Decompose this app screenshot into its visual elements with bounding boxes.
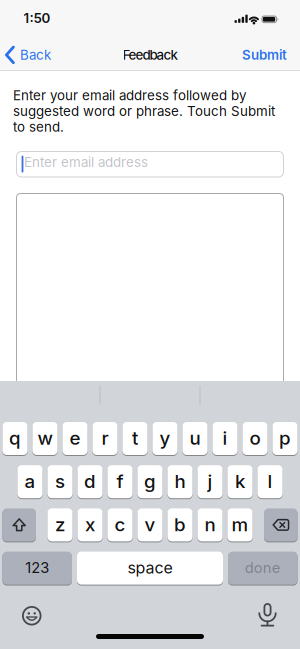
- button[interactable]: m: [227, 508, 253, 542]
- button[interactable]: Back: [5, 37, 51, 72]
- button[interactable]: Delete: [264, 508, 298, 542]
- staticText: z: [55, 513, 65, 535]
- button[interactable]: a: [17, 465, 43, 499]
- button[interactable]: z: [47, 508, 73, 542]
- staticText: Submit: [242, 47, 287, 63]
- button[interactable]: l: [257, 465, 283, 499]
- staticText: n: [204, 513, 215, 535]
- button[interactable]: space: [77, 552, 223, 586]
- staticText: l: [267, 470, 272, 492]
- staticText: q: [9, 427, 21, 449]
- button[interactable]: n: [197, 508, 223, 542]
- staticText: h: [174, 470, 185, 492]
- staticText: x: [85, 513, 95, 535]
- staticText: v: [144, 513, 155, 535]
- staticText: space: [127, 558, 172, 577]
- button[interactable]: u: [182, 422, 208, 456]
- staticText: Enter your email address followed by: [13, 87, 246, 103]
- button[interactable]: k: [227, 465, 253, 499]
- staticText: e: [69, 427, 80, 449]
- staticText: Feedback: [122, 47, 177, 63]
- staticText: u: [189, 427, 200, 449]
- staticText: Enter email address: [24, 154, 148, 170]
- staticText: c: [114, 513, 125, 535]
- button[interactable]: f: [107, 465, 133, 499]
- staticText: g: [144, 470, 156, 492]
- staticText: k: [235, 470, 245, 492]
- button[interactable]: x: [77, 508, 103, 542]
- button[interactable]: w: [32, 422, 58, 456]
- button[interactable]: i: [212, 422, 238, 456]
- staticText: p: [279, 427, 291, 449]
- staticText: i: [222, 427, 227, 449]
- staticText: done: [245, 559, 281, 576]
- staticText: m: [231, 513, 248, 535]
- button[interactable]: done: [228, 552, 298, 586]
- button[interactable]: q: [2, 422, 28, 456]
- staticText: suggested word or phrase. Touch Submit: [13, 103, 275, 119]
- button[interactable]: t: [122, 422, 148, 456]
- button[interactable]: s: [47, 465, 73, 499]
- button[interactable]: p: [272, 422, 298, 456]
- staticText: f: [116, 470, 123, 492]
- button[interactable]: b: [167, 508, 193, 542]
- staticText: r: [101, 427, 108, 449]
- staticText: b: [174, 513, 186, 535]
- staticText: w: [37, 427, 52, 449]
- staticText: t: [132, 427, 138, 449]
- button[interactable]: Emoji: [22, 606, 41, 625]
- staticText: y: [159, 427, 170, 449]
- staticText: j: [207, 470, 212, 492]
- button[interactable]: Dictate: [257, 603, 278, 626]
- staticText: s: [55, 470, 65, 492]
- button[interactable]: Shift: [2, 508, 36, 542]
- staticText: Back: [20, 47, 51, 63]
- button[interactable]: 123: [2, 552, 72, 586]
- button[interactable]: d: [77, 465, 103, 499]
- button[interactable]: g: [137, 465, 163, 499]
- button[interactable]: h: [167, 465, 193, 499]
- button[interactable]: y: [152, 422, 178, 456]
- staticText: 1:50: [23, 10, 50, 26]
- button[interactable]: r: [92, 422, 118, 456]
- button[interactable]: e: [62, 422, 88, 456]
- button[interactable]: Submit: [242, 37, 287, 72]
- staticText: 123: [25, 559, 49, 576]
- staticText: to send.: [13, 119, 64, 135]
- staticText: a: [24, 470, 35, 492]
- staticText: d: [84, 470, 96, 492]
- button[interactable]: v: [137, 508, 163, 542]
- staticText: o: [249, 427, 260, 449]
- button[interactable]: o: [242, 422, 268, 456]
- button[interactable]: c: [107, 508, 133, 542]
- button[interactable]: j: [197, 465, 223, 499]
